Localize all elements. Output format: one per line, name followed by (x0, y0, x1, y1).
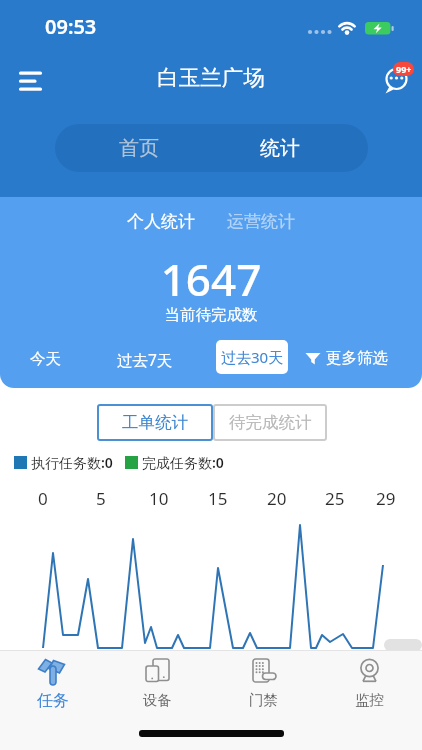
staticText: 当前待完成数 (0, 305, 422, 325)
staticText: 任务 (37, 691, 69, 711)
staticText: 今天 (30, 349, 61, 369)
staticText: 15 (208, 487, 228, 510)
staticText: 09:53 (45, 13, 97, 40)
button[interactable]: 过去7天 (117, 344, 173, 374)
button[interactable]: 任务 (0, 650, 105, 738)
staticText: 过去7天 (117, 349, 173, 370)
staticText: 过去30天 (221, 347, 284, 367)
staticText: 个人统计 (127, 211, 195, 232)
staticText: 监控 (355, 691, 384, 709)
staticText: 更多筛选 (326, 348, 388, 368)
staticText: 完成任务数:0 (142, 453, 224, 472)
button[interactable]: 99+ (393, 62, 414, 76)
button[interactable]: 门禁 (210, 650, 316, 738)
button[interactable]: 监控 (316, 650, 422, 738)
staticText: 运营统计 (227, 211, 295, 232)
staticText: 门禁 (249, 691, 278, 709)
staticText: 待完成统计 (229, 412, 312, 433)
button[interactable]: 设备 (105, 650, 210, 738)
button[interactable]: 过去30天 (216, 340, 288, 374)
staticText: 25 (325, 487, 345, 510)
button[interactable]: 运营统计 (227, 211, 295, 232)
staticText: 10 (149, 487, 169, 510)
button[interactable]: 个人统计 (127, 211, 195, 232)
button[interactable]: 首页 (68, 124, 209, 172)
button[interactable] (32, 60, 72, 100)
staticText: 5 (96, 487, 106, 510)
button[interactable]: 工单统计 (97, 404, 213, 441)
button[interactable]: 今天 (30, 344, 61, 374)
staticText: 首页 (119, 136, 159, 161)
button[interactable]: 待完成统计 (213, 404, 327, 441)
staticText: 20 (267, 487, 287, 510)
button[interactable]: 统计 (209, 124, 351, 172)
staticText: 工单统计 (122, 412, 188, 433)
staticText: 0 (38, 487, 48, 510)
staticText: 白玉兰广场 (0, 64, 422, 91)
staticText: 29 (376, 487, 396, 510)
button[interactable]: 更多筛选 (305, 343, 388, 373)
staticText: 执行任务数:0 (31, 453, 113, 472)
staticText: 99+ (396, 63, 412, 75)
staticText: 1647 (0, 249, 422, 309)
staticText: 设备 (143, 691, 172, 709)
staticText: 统计 (260, 136, 300, 161)
